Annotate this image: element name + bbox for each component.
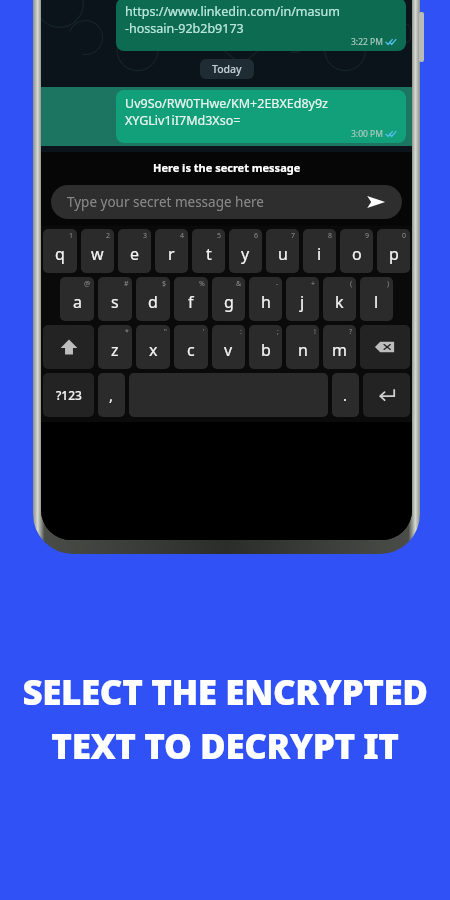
staticText: o [352, 243, 362, 265]
staticText: , [109, 385, 114, 405]
staticText: ( [350, 279, 353, 289]
staticText: 0 [402, 231, 407, 241]
staticText: q [55, 243, 65, 265]
staticText: ; [277, 327, 279, 337]
button[interactable]: Uv9So/RW0THwe/KM+2EBXEd8y9z XYGLiv1iI7Md… [116, 90, 406, 143]
staticText: a [73, 291, 82, 313]
staticText: 3 [143, 231, 148, 241]
staticText: k [335, 291, 344, 313]
staticText: TEXT TO DECRYPT IT [51, 722, 399, 770]
button[interactable]: * [98, 325, 132, 369]
button[interactable]: ; [249, 325, 282, 369]
staticText: 1 [69, 231, 74, 241]
button[interactable]: Type your secret message here [51, 185, 402, 219]
staticText: SELECT THE ENCRYPTED [22, 668, 428, 716]
staticText: ' [203, 327, 205, 337]
staticText: d [148, 291, 158, 313]
staticText: p [389, 243, 399, 265]
staticText: + [311, 279, 316, 289]
button[interactable]: ' [174, 325, 208, 369]
button[interactable]: Backspace [360, 325, 410, 369]
staticText: ? [349, 327, 353, 337]
staticText: 9 [365, 231, 370, 241]
button[interactable]: " [136, 325, 170, 369]
staticText: Type your secret message here [67, 193, 264, 211]
staticText: x [149, 339, 158, 361]
button[interactable]: # [98, 277, 132, 321]
button[interactable]: 3 [118, 229, 151, 273]
button[interactable]: % [174, 277, 208, 321]
staticText: n [298, 339, 308, 361]
staticText: u [278, 243, 288, 265]
button[interactable]: $ [136, 277, 170, 321]
staticText: 2 [106, 231, 111, 241]
staticText: ?123 [56, 387, 82, 403]
staticText: : [240, 327, 242, 337]
button[interactable]: 9 [340, 229, 373, 273]
staticText: t [206, 243, 212, 265]
button[interactable]: - [249, 277, 282, 321]
staticText: h [261, 291, 271, 313]
button[interactable]: 6 [229, 229, 262, 273]
staticText: - [276, 279, 279, 289]
staticText: s [111, 291, 119, 313]
button[interactable]: 7 [266, 229, 299, 273]
staticText: m [332, 339, 347, 361]
button[interactable]: Shift [43, 325, 94, 369]
staticText: c [187, 339, 195, 361]
button[interactable]: & [212, 277, 245, 321]
staticText: b [261, 339, 271, 361]
staticText: ! [314, 327, 316, 337]
button[interactable]: 5 [192, 229, 225, 273]
button[interactable]: @ [60, 277, 94, 321]
staticText: . [343, 385, 348, 405]
button[interactable]: ( [323, 277, 356, 321]
staticText: 3:00 PM [351, 128, 383, 140]
staticText: e [130, 243, 140, 265]
staticText: Here is the secret message [153, 160, 301, 175]
staticText: 6 [254, 231, 259, 241]
staticText: y [241, 243, 250, 265]
button[interactable]: , [98, 373, 125, 417]
button[interactable]: ?123 [43, 373, 94, 417]
staticText: 7 [291, 231, 296, 241]
staticText: f [188, 291, 194, 313]
button[interactable]: ) [360, 277, 393, 321]
staticText: & [236, 279, 242, 289]
button[interactable]: 2 [81, 229, 114, 273]
button[interactable]: . [332, 373, 359, 417]
other: Send [366, 192, 386, 212]
staticText: v [224, 339, 233, 361]
staticText: 5 [217, 231, 222, 241]
button[interactable]: 4 [155, 229, 188, 273]
button[interactable]: ? [323, 325, 356, 369]
button[interactable]: 8 [303, 229, 336, 273]
staticText: z [111, 339, 119, 361]
staticText: # [124, 279, 129, 289]
staticText: Uv9So/RW0THwe/KM+2EBXEd8y9z XYGLiv1iI7Md… [125, 95, 328, 128]
button[interactable]: 1 [43, 229, 77, 273]
staticText: https://www.linkedin.com/in/masum -hossa… [125, 3, 340, 36]
staticText: 4 [180, 231, 185, 241]
staticText: 3:22 PM [351, 36, 383, 48]
staticText: % [199, 279, 205, 289]
button[interactable]: 0 [377, 229, 410, 273]
staticText: @ [84, 279, 91, 289]
button[interactable]: : [212, 325, 245, 369]
button[interactable]: ! [286, 325, 319, 369]
staticText: l [374, 291, 379, 313]
staticText: $ [162, 279, 167, 289]
button[interactable]: Enter [363, 373, 410, 417]
staticText: i [317, 243, 322, 265]
staticText: 8 [328, 231, 333, 241]
staticText: j [300, 291, 305, 313]
staticText: r [168, 243, 175, 265]
staticText: w [91, 243, 104, 265]
staticText: g [224, 291, 234, 313]
staticText: ) [387, 279, 390, 289]
staticText: " [164, 327, 167, 337]
staticText: * [125, 327, 129, 337]
staticText: Today [212, 62, 242, 76]
button[interactable]: + [286, 277, 319, 321]
